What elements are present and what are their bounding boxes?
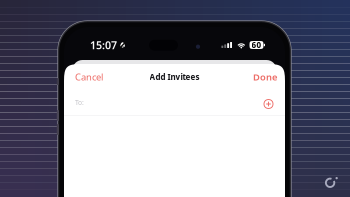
staticText: 15:07 (90, 38, 117, 52)
button[interactable]: To: (64, 90, 285, 115)
staticText: To: (75, 98, 84, 107)
button[interactable]: Done (251, 68, 279, 86)
staticText: Cancel (75, 71, 103, 83)
staticText: Add Invitees (149, 72, 199, 82)
button[interactable]: Cancel (73, 68, 105, 86)
staticText: Done (253, 71, 277, 83)
staticText: 60 (251, 40, 261, 50)
